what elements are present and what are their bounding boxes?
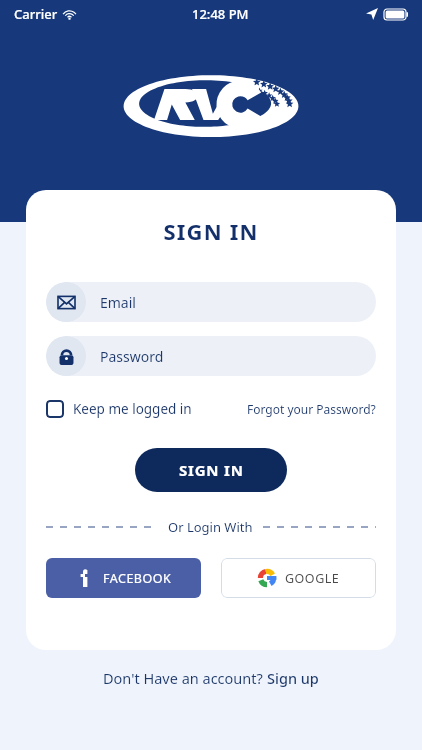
staticText: FACEBOOK [103,570,172,587]
button[interactable]: Forgot your Password? [247,397,376,421]
button[interactable]: SIGN IN [135,448,287,492]
staticText: GOOGLE [285,570,340,587]
staticText: Keep me logged in [73,400,192,418]
staticText: Don't Have an account? [103,668,267,688]
button[interactable]: Password [46,336,376,376]
staticText: Carrier [14,5,58,23]
staticText: Or Login With [168,518,253,536]
staticText: Password [100,347,164,366]
staticText: SIGN IN [179,460,244,480]
staticText: Sign up [267,668,319,688]
staticText: SIGN IN [46,216,376,246]
button[interactable]: Keep me logged in [46,396,192,422]
button[interactable]: GOOGLE [221,558,376,598]
button[interactable]: Email [46,282,376,322]
button[interactable]: FACEBOOK [46,558,201,598]
staticText: 12:48 PM [192,5,249,23]
button[interactable]: Don't Have an account? [97,662,325,694]
staticText: Forgot your Password? [247,401,376,417]
staticText: Email [100,293,136,312]
